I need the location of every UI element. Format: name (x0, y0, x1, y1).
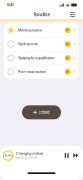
button[interactable]: Create (22, 105, 61, 119)
staticText: Morning routine (16, 156, 38, 159)
staticText: Post-meal routine (18, 70, 46, 74)
staticText: Starting work (18, 42, 38, 46)
button[interactable]: Filter options (68, 10, 77, 19)
button[interactable]: Morning routine (4, 23, 79, 37)
button[interactable]: Studying for a qualification (4, 51, 79, 65)
staticText: Studying for a qualification (18, 56, 54, 60)
button[interactable]: Next (71, 150, 80, 160)
staticText: Routine (33, 12, 49, 17)
button[interactable]: Post-meal routine (4, 65, 79, 79)
staticText: Morning routine (18, 28, 42, 32)
button[interactable]: Starting work (4, 37, 79, 51)
staticText: 10:49 (4, 154, 12, 157)
staticText: Create (38, 110, 49, 114)
staticText: Changing clothes (16, 151, 44, 156)
staticText: 9:41 (7, 3, 14, 7)
button[interactable]: Pause (62, 150, 71, 160)
